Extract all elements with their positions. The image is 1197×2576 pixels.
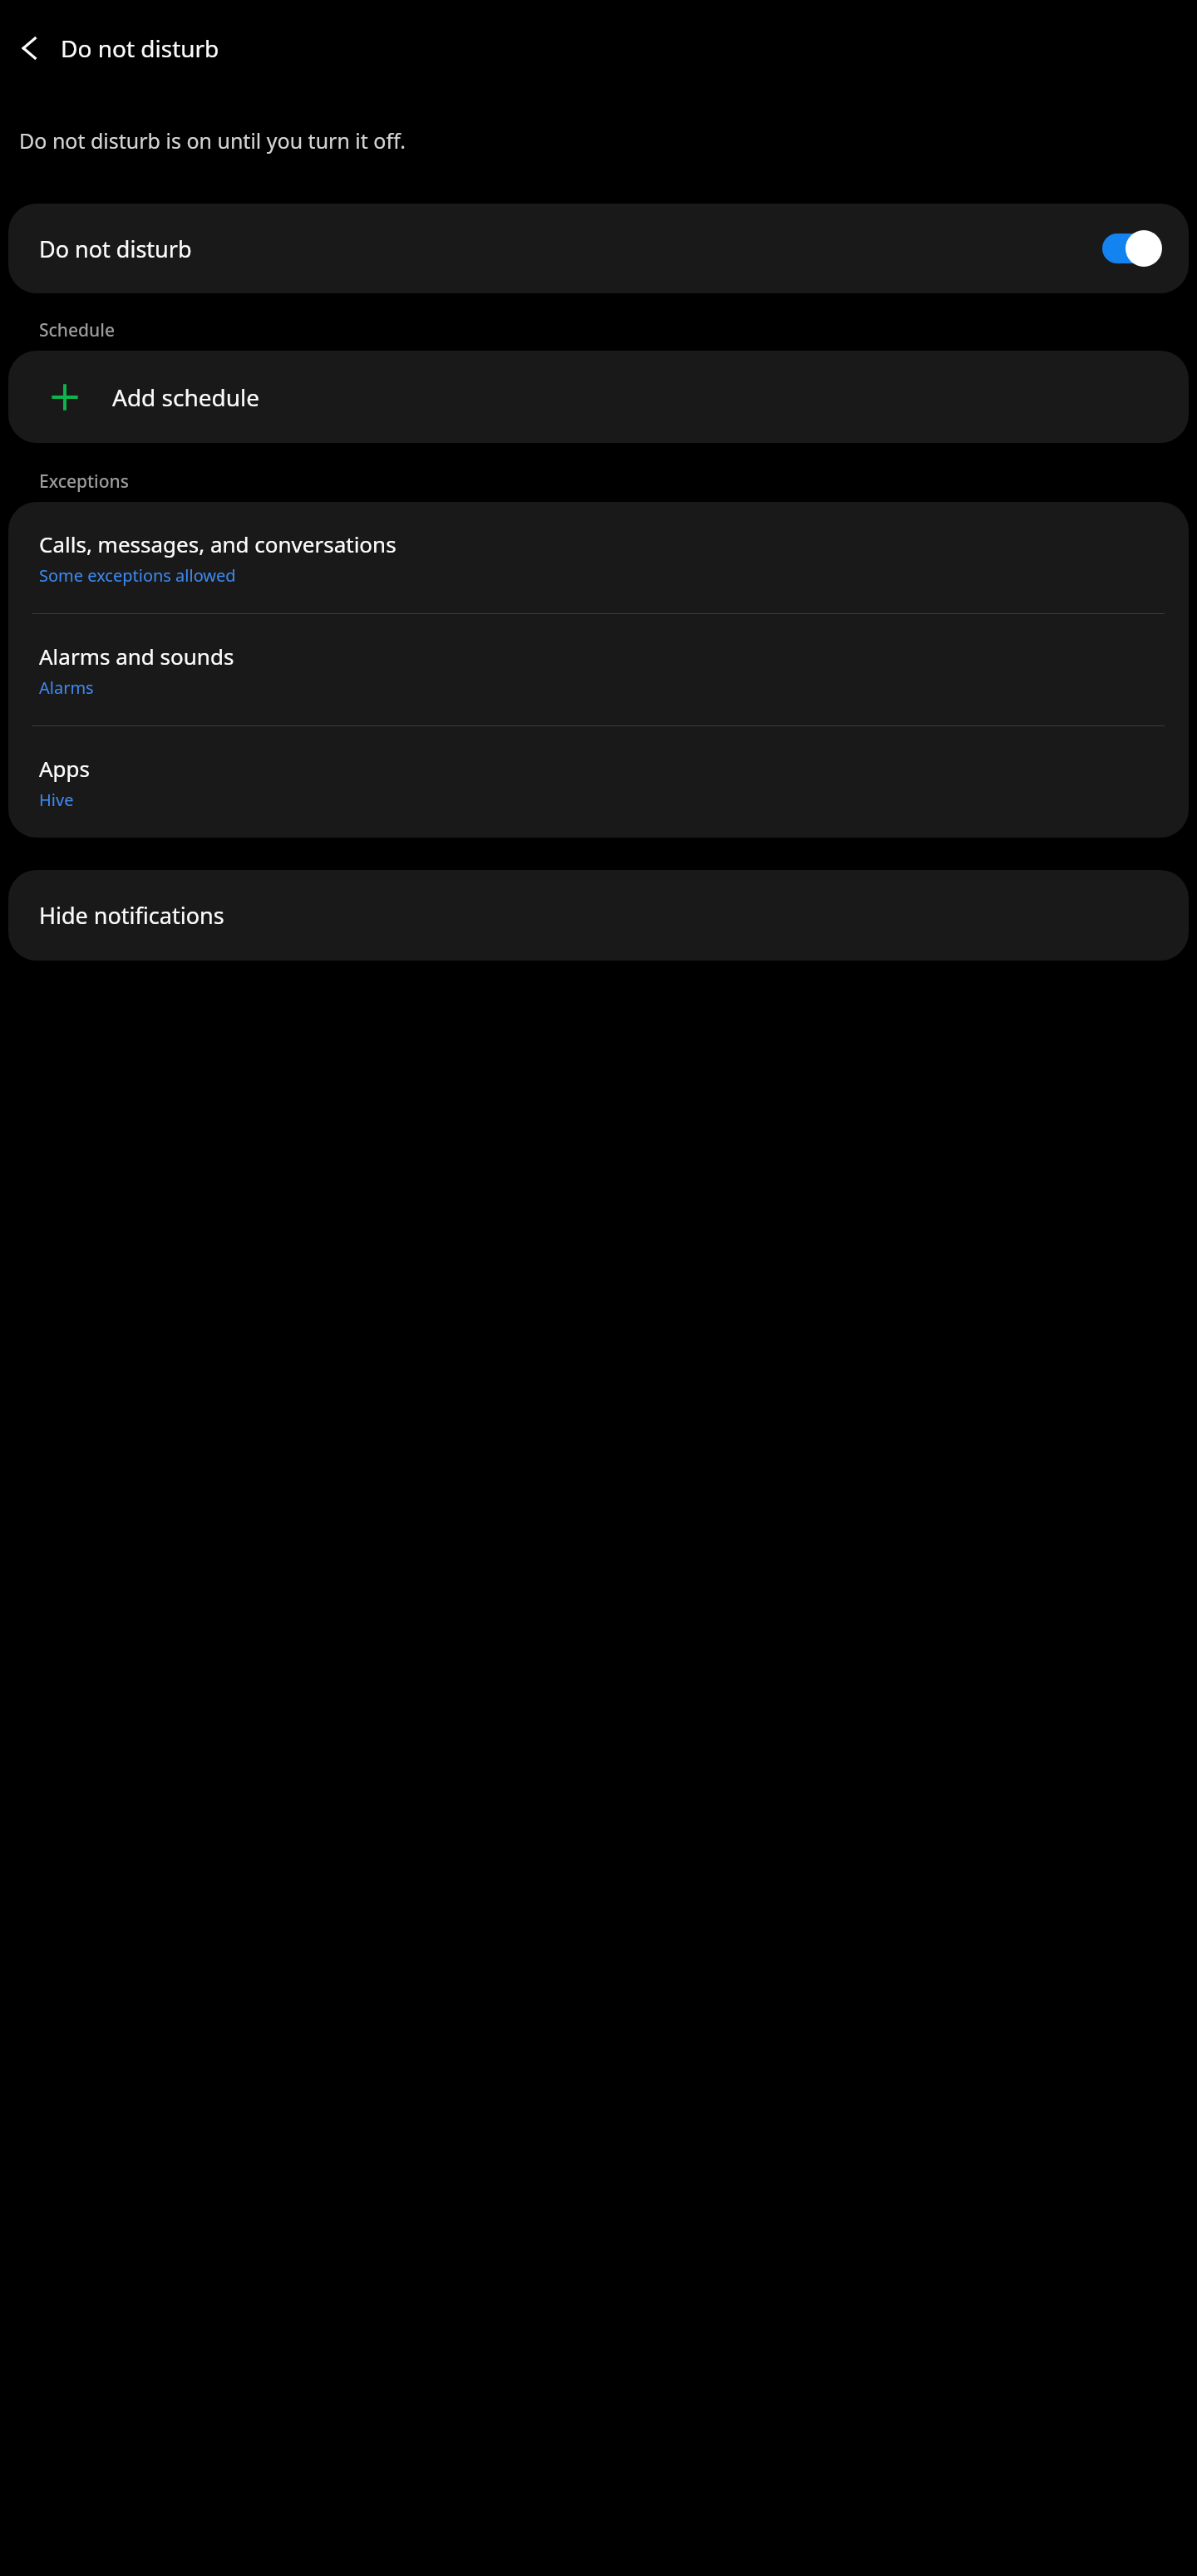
- staticText: Some exceptions allowed: [39, 564, 236, 587]
- staticText: Exceptions: [39, 469, 129, 494]
- staticText: Alarms: [39, 676, 94, 699]
- staticText: Hide notifications: [39, 900, 224, 931]
- button[interactable]: Apps: [8, 726, 1189, 838]
- staticText: Calls, messages, and conversations: [39, 529, 397, 558]
- staticText: Apps: [39, 754, 91, 783]
- button[interactable]: Alarms and sounds: [8, 614, 1189, 725]
- button[interactable]: Back: [8, 27, 52, 70]
- staticText: Hive: [39, 789, 74, 811]
- button[interactable]: Do not disturb: [8, 204, 1189, 293]
- staticText: Do not disturb is on until you turn it o…: [19, 126, 406, 155]
- staticText: Add schedule: [112, 381, 260, 413]
- staticText: Schedule: [39, 318, 115, 342]
- button[interactable]: Calls, messages, and conversations: [8, 502, 1189, 613]
- button[interactable]: Hide notifications: [8, 870, 1189, 961]
- button[interactable]: Add schedule: [8, 351, 1189, 443]
- staticText: Do not disturb: [39, 234, 1102, 264]
- staticText: Do not disturb: [61, 32, 219, 64]
- staticText: Alarms and sounds: [39, 642, 234, 671]
